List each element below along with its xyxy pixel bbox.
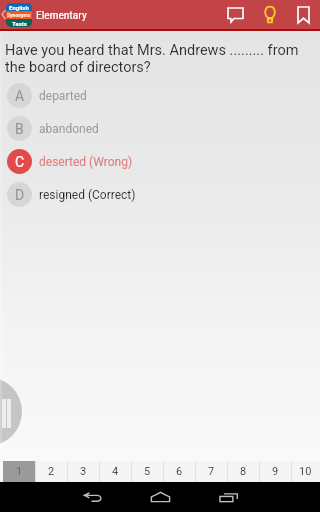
button[interactable]: 2 [35,461,67,482]
button[interactable]: 9 [259,461,291,482]
button[interactable]: 8 [227,461,259,482]
button[interactable]: Bookmark [286,0,320,29]
staticText: 7 [208,465,215,478]
staticText: 5 [144,465,151,478]
button[interactable]: D [0,178,320,211]
button[interactable]: 3 [67,461,99,482]
staticText: Have you heard that Mrs. Andrews .......… [5,42,310,76]
button[interactable]: Home [124,482,196,512]
button[interactable]: Comments [218,0,253,29]
staticText: 9 [272,465,279,478]
button[interactable]: 6 [163,461,195,482]
staticText: Elementary [36,8,87,21]
button[interactable]: C [0,145,320,178]
button[interactable]: Recent apps [196,482,268,512]
staticText: abandoned [39,122,99,136]
button[interactable]: Hint [253,0,286,29]
staticText: A [15,88,25,104]
staticText: 10 [299,465,312,478]
staticText: English [9,4,29,11]
button[interactable]: 5 [131,461,163,482]
button[interactable]: A [0,79,320,112]
button[interactable]: 4 [99,461,131,482]
button[interactable]: 7 [195,461,227,482]
button[interactable]: 10 [291,461,320,482]
staticText: deserted (Wrong) [39,155,133,169]
staticText: 2 [48,465,55,478]
staticText: D [15,187,25,203]
staticText: 4 [112,465,119,478]
button[interactable]: B [0,112,320,145]
staticText: 3 [80,465,87,478]
button[interactable]: Navigate up [0,0,33,29]
button[interactable]: Back [52,482,124,512]
button[interactable]: 1 [3,461,35,482]
staticText: 1 [16,465,23,478]
staticText: 8 [240,465,247,478]
staticText: departed [39,89,87,103]
staticText: Synonyms [7,12,31,18]
staticText: resigned (Correct) [39,188,136,202]
staticText: C [15,154,25,170]
button[interactable]: Pause [0,377,22,446]
staticText: B [15,121,24,137]
staticText: 6 [176,465,183,478]
staticText: Tests [12,20,27,27]
